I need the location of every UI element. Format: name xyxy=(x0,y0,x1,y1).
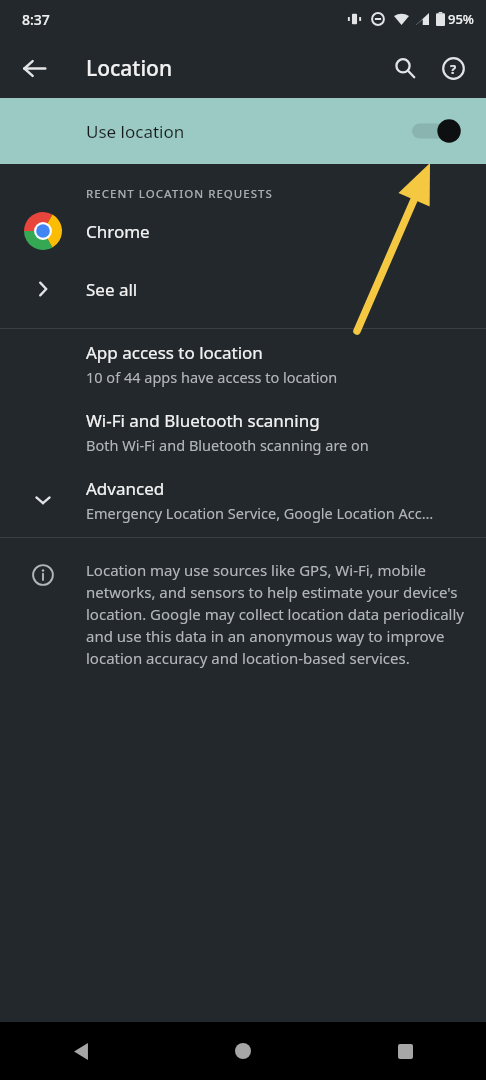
staticText: Chrome xyxy=(86,220,150,243)
staticText: App access to location xyxy=(86,341,263,364)
staticText: Location xyxy=(86,54,173,83)
staticText: 95% xyxy=(448,10,474,28)
staticText: Emergency Location Service, Google Locat… xyxy=(86,503,434,523)
staticText: ? xyxy=(450,60,457,78)
staticText: Both Wi-Fi and Bluetooth scanning are on xyxy=(86,435,369,455)
button[interactable]: Chrome xyxy=(0,202,486,260)
button[interactable]: App access to location xyxy=(0,341,486,387)
staticText: 8:37 xyxy=(22,10,50,29)
staticText: See all xyxy=(86,278,138,301)
button[interactable]: Use location xyxy=(0,98,486,164)
button[interactable]: Help xyxy=(429,44,477,92)
staticText: 10 of 44 apps have access to location xyxy=(86,367,338,387)
button[interactable]: Home xyxy=(162,1022,324,1080)
button[interactable]: Back xyxy=(10,44,58,92)
staticText: Location may use sources like GPS, Wi-Fi… xyxy=(86,560,464,669)
button[interactable]: Recent apps xyxy=(324,1022,486,1080)
staticText: Advanced xyxy=(86,477,165,500)
staticText: RECENT LOCATION REQUESTS xyxy=(86,186,273,202)
button[interactable]: Search xyxy=(381,44,429,92)
button[interactable]: Advanced xyxy=(0,477,486,523)
staticText: Wi-Fi and Bluetooth scanning xyxy=(86,409,320,432)
button[interactable]: See all xyxy=(0,260,486,318)
button[interactable]: Wi-Fi and Bluetooth scanning xyxy=(0,409,486,455)
staticText: Use location xyxy=(86,120,185,143)
button[interactable]: Back xyxy=(0,1022,162,1080)
